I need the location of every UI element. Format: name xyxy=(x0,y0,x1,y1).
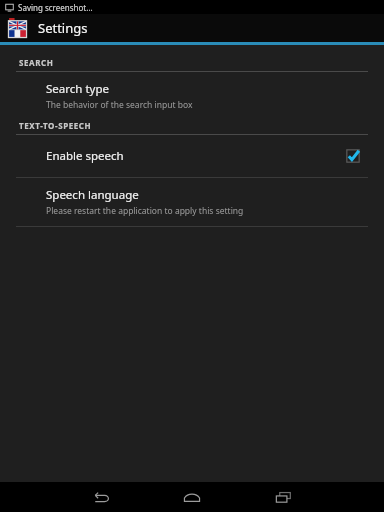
staticText: SEARCH xyxy=(19,57,54,68)
button[interactable]: Recent apps xyxy=(259,482,307,512)
staticText: Enable speech xyxy=(46,148,346,164)
button[interactable]: Search type xyxy=(0,72,384,120)
button[interactable]: Enable speech xyxy=(0,135,384,177)
button[interactable]: Speech language xyxy=(0,178,384,226)
staticText: The behavior of the search input box xyxy=(46,99,193,111)
button[interactable]: Home xyxy=(168,482,216,512)
staticText: Settings xyxy=(38,19,88,37)
other: Enable speech checkbox xyxy=(346,149,360,163)
staticText: Saving screenshot... xyxy=(18,2,93,13)
staticText: Search type xyxy=(46,81,109,97)
staticText: TEXT-TO-SPEECH xyxy=(19,120,92,131)
staticText: Speech language xyxy=(46,187,139,203)
button[interactable]: App icon xyxy=(7,18,28,39)
button[interactable]: Back xyxy=(77,482,125,512)
staticText: Please restart the application to apply … xyxy=(46,205,244,217)
